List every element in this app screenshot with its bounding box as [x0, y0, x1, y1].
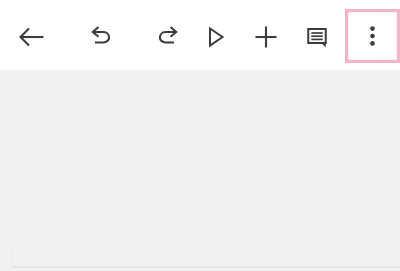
button[interactable]: More options [345, 9, 400, 63]
button[interactable]: Comments [297, 17, 337, 57]
button[interactable]: Run [195, 17, 235, 57]
button[interactable]: Redo [147, 17, 187, 57]
button[interactable]: Undo [82, 17, 122, 57]
button[interactable]: Add [246, 17, 286, 57]
button[interactable]: Back [12, 17, 52, 57]
